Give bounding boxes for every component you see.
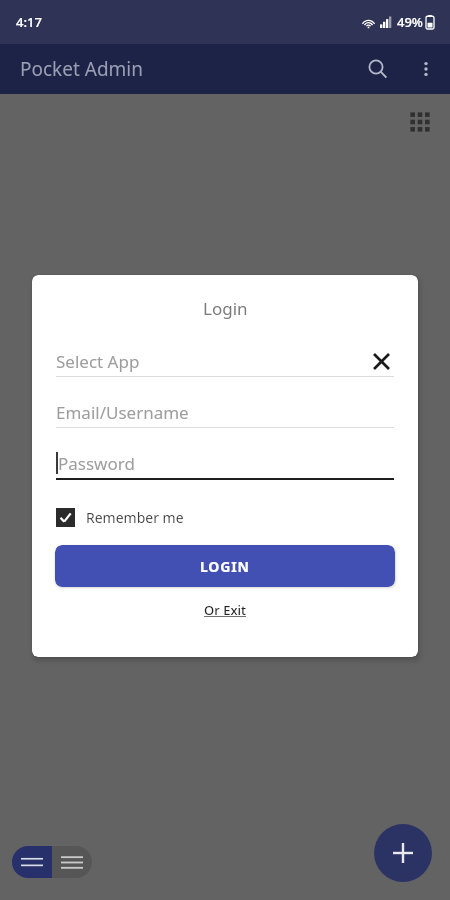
button[interactable]: Grid view: [12, 846, 52, 878]
staticText: Login: [203, 297, 248, 320]
button[interactable]: Or Exit: [196, 599, 254, 621]
staticText: 49%: [397, 13, 423, 31]
button[interactable]: Remember me: [56, 502, 184, 532]
button[interactable]: Select App: [56, 346, 394, 376]
staticText: LOGIN: [200, 557, 250, 576]
staticText: Select App: [56, 350, 140, 373]
button[interactable]: Password: [56, 448, 394, 478]
button[interactable]: Clear: [368, 348, 394, 374]
button[interactable]: LOGIN: [55, 545, 395, 587]
staticText: Remember me: [86, 508, 184, 527]
button[interactable]: Apps grid: [402, 104, 438, 140]
button[interactable]: More options: [402, 45, 450, 93]
staticText: Password: [58, 452, 135, 475]
button[interactable]: Search: [354, 45, 402, 93]
button[interactable]: Email/Username: [56, 397, 394, 427]
button[interactable]: List view: [52, 846, 92, 878]
staticText: Pocket Admin: [20, 56, 144, 82]
staticText: 4:17: [16, 13, 42, 31]
staticText: Or Exit: [204, 601, 246, 619]
staticText: Email/Username: [56, 401, 189, 424]
button[interactable]: Add: [374, 824, 432, 882]
